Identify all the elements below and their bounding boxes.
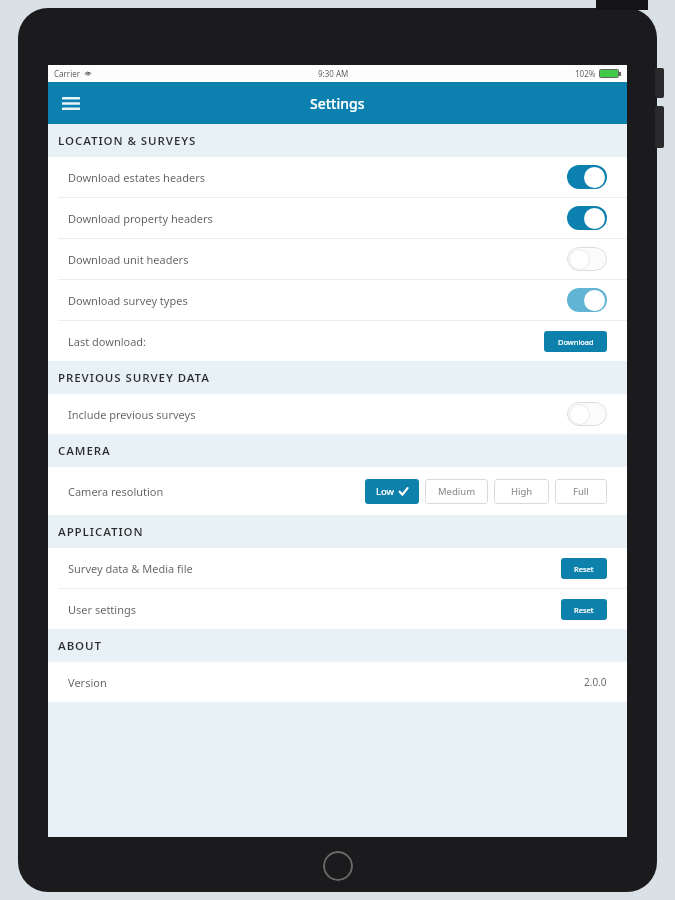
staticText: PREVIOUS SURVEY DATA <box>58 370 210 386</box>
staticText: Full <box>573 485 589 498</box>
staticText: Camera resolution <box>68 484 164 499</box>
staticText: 9:30 AM <box>318 68 349 79</box>
button[interactable]: Full <box>555 479 607 504</box>
staticText: Low <box>376 485 395 498</box>
staticText: ABOUT <box>58 638 102 654</box>
button[interactable]: Medium <box>425 479 488 504</box>
button[interactable]: On <box>567 206 607 230</box>
staticText: APPLICATION <box>58 524 144 540</box>
staticText: High <box>511 485 533 498</box>
button[interactable]: Download property headers <box>48 198 627 238</box>
button[interactable]: High <box>494 479 549 504</box>
button[interactable]: Download unit headers <box>48 239 627 279</box>
staticText: Download property headers <box>68 211 213 226</box>
button[interactable]: Download <box>544 331 607 352</box>
staticText: Download unit headers <box>68 252 189 267</box>
button[interactable]: Low <box>365 479 419 504</box>
button[interactable]: Version <box>48 662 627 702</box>
staticText: Download estates headers <box>68 170 206 185</box>
button[interactable]: On <box>567 165 607 189</box>
staticText: Download <box>558 337 594 347</box>
button[interactable]: Download survey types <box>48 280 627 320</box>
staticText: Survey data & Media file <box>68 561 193 576</box>
button[interactable]: Home <box>323 851 353 881</box>
button[interactable]: Menu <box>56 88 86 118</box>
button[interactable]: Off <box>567 402 607 426</box>
button[interactable]: Include previous surveys <box>48 394 627 434</box>
staticText: Carrier <box>54 68 81 79</box>
staticText: Medium <box>438 485 476 498</box>
staticText: Version <box>68 675 107 690</box>
button[interactable]: On <box>567 288 607 312</box>
staticText: Reset <box>574 564 594 574</box>
staticText: Download survey types <box>68 293 188 308</box>
button[interactable]: Reset <box>561 558 607 579</box>
staticText: Settings <box>310 94 365 113</box>
staticText: User settings <box>68 602 137 617</box>
staticText: LOCATION & SURVEYS <box>58 133 197 149</box>
staticText: Reset <box>574 605 594 615</box>
staticText: 102% <box>575 68 596 79</box>
staticText: Include previous surveys <box>68 407 196 422</box>
staticText: CAMERA <box>58 443 111 459</box>
staticText: 2.0.0 <box>584 675 607 689</box>
button[interactable]: Download estates headers <box>48 157 627 197</box>
staticText: Last download: <box>68 334 147 349</box>
button[interactable]: Reset <box>561 599 607 620</box>
button[interactable]: Off <box>567 247 607 271</box>
